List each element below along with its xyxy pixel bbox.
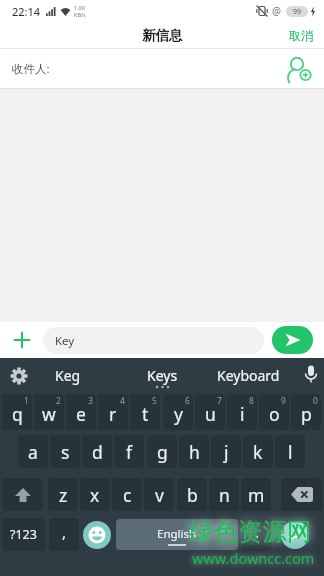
button[interactable]: 2 (34, 394, 64, 430)
button[interactable]: 4 (98, 394, 128, 430)
staticText: Keg (55, 366, 81, 385)
staticText: s (61, 440, 70, 464)
staticText: 4 (120, 395, 125, 407)
button[interactable]: ?123 (2, 518, 45, 551)
button[interactable]: l (275, 435, 305, 468)
button[interactable]: c (112, 478, 142, 511)
button[interactable]: 3 (66, 394, 96, 430)
button[interactable] (281, 478, 322, 511)
staticText: 9 (281, 395, 286, 407)
button[interactable]: . (242, 518, 272, 551)
button[interactable]: z (48, 478, 78, 511)
staticText: 3 (88, 395, 93, 407)
staticText: l (288, 440, 293, 464)
staticText: r (109, 402, 117, 426)
staticText: c (123, 483, 132, 507)
button[interactable]: 8 (227, 394, 257, 430)
staticText: , (62, 522, 67, 542)
button[interactable]: English (116, 519, 238, 550)
staticText: f (126, 440, 133, 464)
staticText: t (142, 402, 149, 426)
staticText: @ (272, 4, 281, 18)
button[interactable]: 7 (195, 394, 225, 430)
button[interactable]: v (144, 478, 174, 511)
staticText: Key (55, 333, 75, 349)
staticText: Keys (147, 366, 178, 385)
staticText: o (269, 402, 280, 426)
staticText: 绿色资源网 (189, 516, 312, 547)
button[interactable]: Keys (130, 364, 194, 386)
button[interactable]: 0 (291, 394, 321, 430)
staticText: 99 (293, 7, 302, 17)
button[interactable]: f (114, 435, 144, 468)
staticText: j (224, 440, 229, 464)
button[interactable]: d (82, 435, 112, 468)
button[interactable]: h (179, 435, 209, 468)
button[interactable]: j (211, 435, 241, 468)
button[interactable]: 6 (163, 394, 193, 430)
staticText: 取消 (289, 28, 313, 43)
staticText: English (157, 526, 197, 542)
button[interactable] (83, 521, 111, 549)
staticText: 0 (313, 395, 318, 407)
staticText: q (12, 402, 23, 426)
staticText: m (248, 483, 265, 507)
button[interactable]: Keg (36, 364, 100, 386)
staticText: 22:14 (12, 4, 41, 19)
staticText: w (42, 402, 56, 426)
button[interactable]: m (241, 478, 271, 511)
staticText: u (205, 402, 216, 426)
staticText: 2 (56, 395, 61, 407)
staticText: 8 (249, 395, 254, 407)
staticText: b (187, 483, 198, 507)
staticText: 7 (217, 395, 222, 407)
button[interactable]: , (49, 518, 79, 551)
staticText: . (255, 522, 260, 542)
button[interactable] (2, 478, 43, 511)
staticText: 5 (152, 395, 157, 407)
staticText: 6 (185, 395, 190, 407)
button[interactable]: a (18, 435, 48, 468)
staticText: k (253, 440, 263, 464)
button[interactable]: k (243, 435, 273, 468)
button[interactable]: s (50, 435, 80, 468)
staticText: g (157, 440, 168, 464)
button[interactable] (286, 56, 312, 82)
staticText: 1.00 (74, 4, 85, 11)
button[interactable] (281, 521, 309, 549)
button[interactable] (303, 365, 319, 385)
staticText: p (301, 402, 312, 426)
staticText: KB/s (74, 11, 86, 18)
button[interactable]: 9 (259, 394, 289, 430)
staticText: i (240, 402, 245, 426)
button[interactable]: x (80, 478, 110, 511)
staticText: h (189, 440, 200, 464)
staticText: n (219, 483, 230, 507)
button[interactable]: 收件人: (0, 49, 324, 88)
button[interactable]: g (147, 435, 177, 468)
staticText: v (155, 483, 164, 507)
button[interactable]: 取消 (289, 28, 313, 43)
button[interactable] (10, 367, 28, 385)
staticText: z (59, 483, 68, 507)
button[interactable]: 5 (130, 394, 160, 430)
staticText: 收件人: (12, 61, 50, 77)
staticText: ?123 (10, 526, 37, 543)
staticText: e (76, 402, 86, 426)
button[interactable]: 1 (2, 394, 32, 430)
staticText: Keyboard (217, 366, 280, 385)
staticText: y (174, 402, 183, 426)
button[interactable] (14, 332, 30, 348)
button[interactable]: Key (43, 327, 264, 354)
staticText: x (90, 483, 100, 507)
staticText: 1 (24, 395, 29, 407)
button[interactable]: n (209, 478, 239, 511)
button[interactable] (272, 326, 313, 354)
staticText: a (28, 440, 38, 464)
button[interactable]: Keyboard (206, 364, 290, 386)
button[interactable]: b (177, 478, 207, 511)
staticText: www.downcc.com (192, 548, 315, 568)
staticText: d (92, 440, 103, 464)
staticText: 新信息 (142, 27, 183, 44)
